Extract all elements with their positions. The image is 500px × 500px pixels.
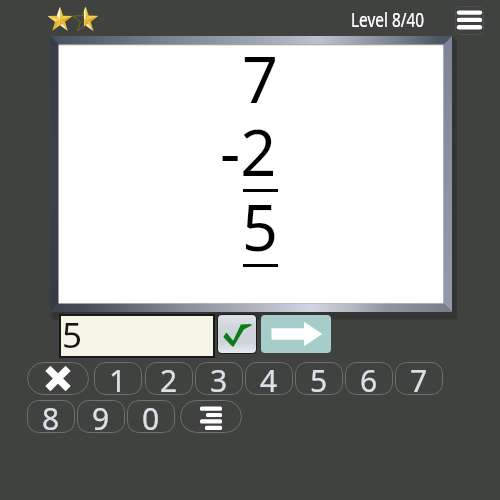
- staticText: 5: [242, 184, 279, 270]
- staticText: 6: [360, 362, 378, 393]
- staticText: -2: [220, 109, 277, 195]
- button[interactable]: Next: [261, 315, 331, 353]
- button[interactable]: Options: [180, 400, 242, 433]
- staticText: 8: [42, 400, 60, 431]
- button[interactable]: 9: [77, 400, 125, 433]
- staticText: 0: [142, 400, 160, 431]
- staticText: 5: [62, 311, 83, 351]
- staticText: 9: [92, 400, 110, 431]
- button[interactable]: Delete: [27, 362, 89, 395]
- button[interactable]: 4: [245, 362, 293, 395]
- staticText: 2: [160, 362, 178, 393]
- button[interactable]: Check answer: [218, 315, 256, 353]
- button[interactable]: 8: [27, 400, 75, 433]
- staticText: 4: [260, 362, 278, 393]
- button[interactable]: 6: [345, 362, 393, 395]
- staticText: 7: [242, 36, 279, 122]
- button[interactable]: 0: [127, 400, 175, 433]
- staticText: 5: [310, 362, 328, 393]
- staticText: 1: [109, 362, 127, 393]
- button[interactable]: Menu: [455, 6, 484, 35]
- button[interactable]: 2: [145, 362, 193, 395]
- button[interactable]: 1: [94, 362, 142, 395]
- staticText: 7: [410, 362, 428, 393]
- button[interactable]: 5: [295, 362, 343, 395]
- button[interactable]: 3: [195, 362, 243, 395]
- button[interactable]: 5: [59, 314, 215, 358]
- staticText: 3: [210, 362, 228, 393]
- button[interactable]: 7: [395, 362, 443, 395]
- staticText: Level 8/40: [351, 6, 424, 33]
